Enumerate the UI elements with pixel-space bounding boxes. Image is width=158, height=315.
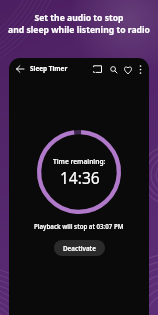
button[interactable]: Back: [14, 63, 26, 75]
button[interactable]: Favorite: [121, 63, 134, 76]
staticText: Time remaining:: [53, 157, 106, 166]
staticText: Sleep Timer: [30, 64, 68, 73]
button[interactable]: More options: [134, 63, 146, 75]
staticText: Deactivate: [63, 244, 96, 253]
staticText: Playback will stop at 03:07 PM: [34, 222, 124, 230]
staticText: 14:36: [60, 167, 100, 188]
staticText: and sleep while listening to radio: [8, 24, 150, 36]
button[interactable]: Cast: [90, 62, 104, 76]
staticText: Set the audio to stop: [34, 12, 124, 24]
button[interactable]: Search: [107, 63, 120, 76]
button[interactable]: Deactivate: [54, 240, 105, 256]
